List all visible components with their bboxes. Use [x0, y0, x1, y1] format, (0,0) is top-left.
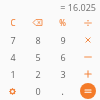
button[interactable]: 4: [0, 48, 25, 65]
button[interactable]: 9: [50, 31, 75, 48]
button[interactable]: 2: [25, 65, 50, 82]
button[interactable]: Add: [75, 65, 100, 82]
staticText: 9: [60, 34, 66, 46]
button[interactable]: 6: [50, 48, 75, 65]
button[interactable]: 3: [50, 65, 75, 82]
staticText: 8: [35, 34, 41, 46]
button[interactable]: Settings: [0, 82, 25, 100]
button[interactable]: .: [50, 82, 75, 100]
button[interactable]: Equals: [80, 83, 96, 99]
staticText: 1: [10, 68, 16, 80]
button[interactable]: Backspace: [25, 14, 50, 31]
staticText: = 16.025: [60, 1, 96, 13]
button[interactable]: 1: [0, 65, 25, 82]
button[interactable]: 7: [0, 31, 25, 48]
button[interactable]: Divide: [75, 14, 100, 31]
button[interactable]: Multiply: [75, 31, 100, 48]
staticText: 3: [60, 68, 66, 80]
staticText: .: [61, 84, 64, 98]
staticText: %: [59, 17, 66, 28]
button[interactable]: C: [0, 14, 25, 31]
staticText: C: [10, 17, 16, 28]
button[interactable]: 0: [25, 82, 50, 100]
staticText: 7: [10, 34, 16, 46]
staticText: 5: [35, 51, 41, 63]
button[interactable]: %: [50, 14, 75, 31]
staticText: 2: [35, 68, 41, 80]
button[interactable]: 8: [25, 31, 50, 48]
staticText: 4: [10, 51, 16, 63]
staticText: 6: [60, 51, 66, 63]
button[interactable]: Subtract: [75, 48, 100, 65]
staticText: 0: [35, 85, 41, 97]
button[interactable]: 5: [25, 48, 50, 65]
